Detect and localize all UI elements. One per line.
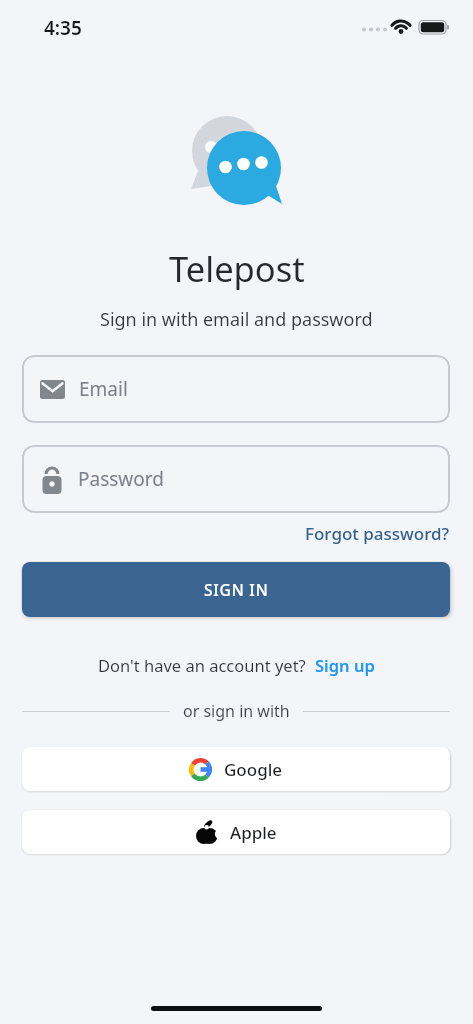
button[interactable]: Sign up [315, 654, 375, 676]
button[interactable]: SIGN IN [22, 562, 450, 617]
staticText: Google [224, 758, 283, 781]
button[interactable]: Forgot password? [305, 522, 450, 545]
staticText: or sign in with [183, 700, 290, 722]
staticText: Sign up [315, 654, 375, 676]
staticText: Telepost [169, 245, 305, 291]
staticText: Sign in with email and password [100, 307, 373, 332]
staticText: Forgot password? [305, 522, 450, 545]
button[interactable]: Google [22, 747, 450, 791]
staticText: Email [79, 376, 128, 402]
button[interactable]: Apple [22, 810, 450, 854]
staticText: Apple [230, 821, 277, 844]
staticText: Don't have an account yet? [98, 654, 306, 676]
staticText: SIGN IN [204, 579, 269, 600]
button[interactable]: Email [22, 355, 450, 423]
button[interactable]: Password [22, 445, 450, 513]
staticText: Password [78, 466, 164, 492]
staticText: 4:35 [44, 15, 82, 41]
